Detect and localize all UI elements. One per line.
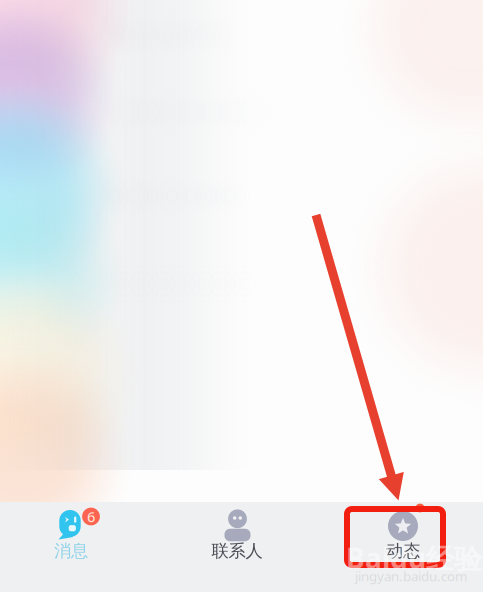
staticText: 6 [87, 507, 95, 526]
staticText: Baidu经验 [346, 539, 482, 577]
button[interactable]: 消息 [0, 502, 161, 592]
staticText: 消息 [54, 540, 88, 562]
button[interactable]: 动态 [322, 502, 483, 592]
staticText: jingyan.baidu.com [355, 567, 467, 585]
button[interactable]: 联系人 [161, 502, 322, 592]
staticText: 联系人 [211, 540, 262, 562]
staticText: 动态 [386, 540, 420, 562]
